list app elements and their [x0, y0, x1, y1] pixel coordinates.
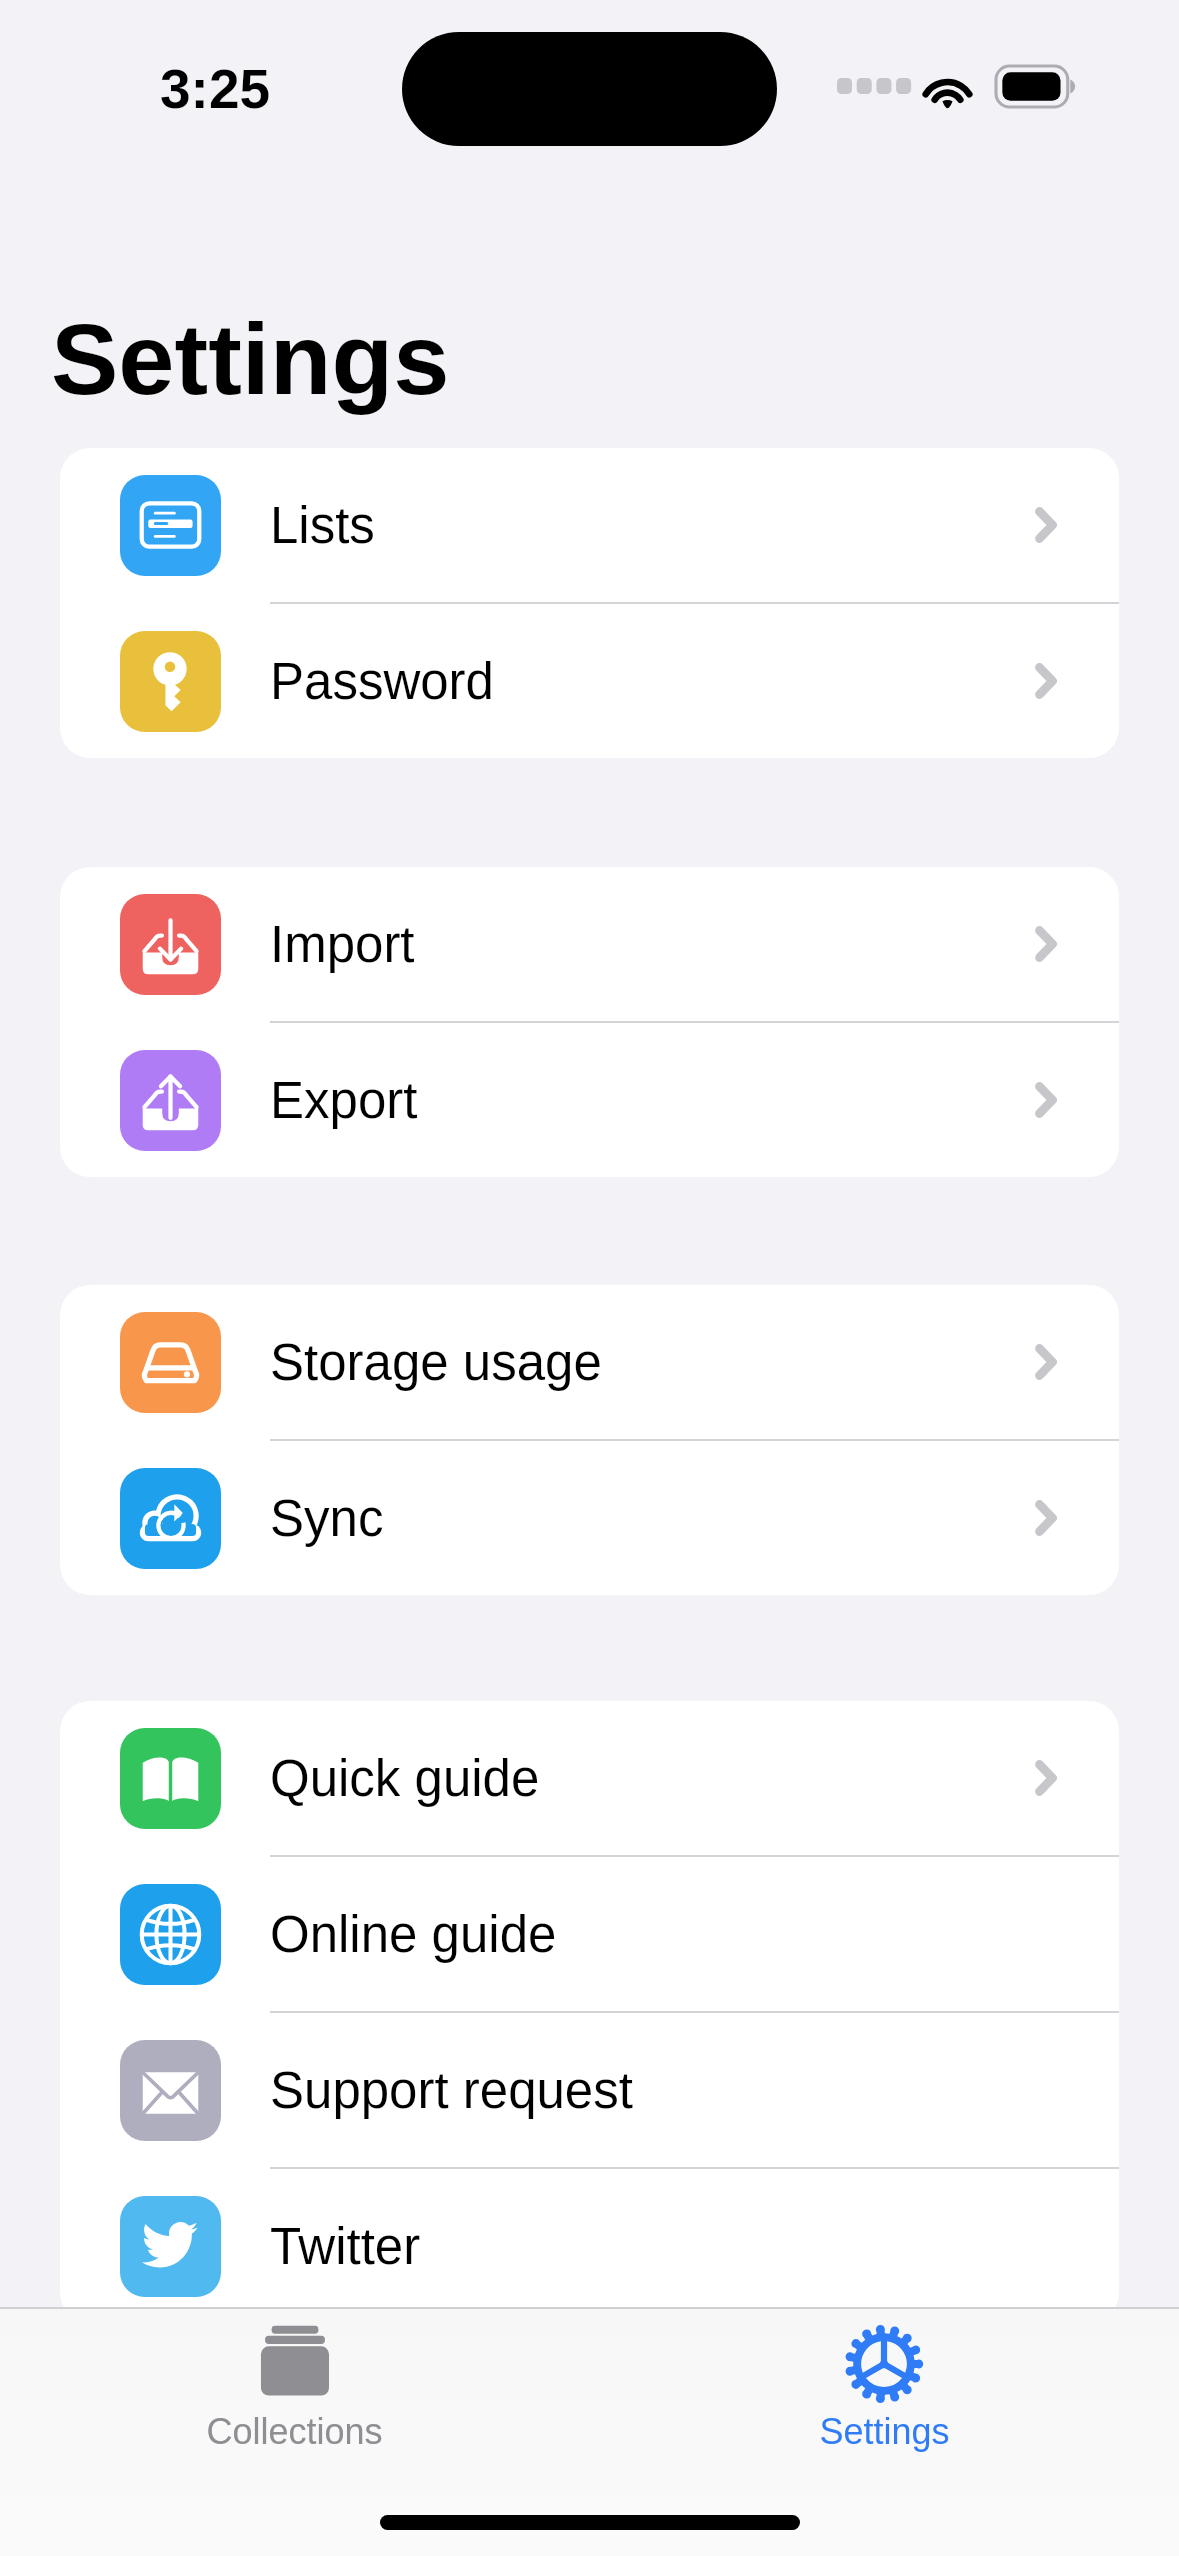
- staticText: Quick guide: [270, 1750, 540, 1807]
- staticText: Online guide: [270, 1906, 557, 1963]
- staticText: Settings: [819, 2411, 950, 2451]
- button[interactable]: Twitter: [60, 2169, 1119, 2323]
- staticText: Support request: [270, 2062, 633, 2119]
- button[interactable]: Online guide: [60, 1857, 1119, 2011]
- staticText: Settings: [51, 303, 450, 416]
- button[interactable]: Settings: [589, 2309, 1179, 2451]
- staticText: Twitter: [270, 2218, 421, 2275]
- staticText: Collections: [206, 2411, 383, 2451]
- button[interactable]: Collections: [0, 2309, 589, 2451]
- button[interactable]: Sync: [60, 1441, 1119, 1595]
- staticText: Password: [270, 653, 494, 710]
- staticText: Lists: [270, 497, 375, 554]
- staticText: Storage usage: [270, 1334, 602, 1391]
- button[interactable]: Support request: [60, 2013, 1119, 2167]
- button[interactable]: Password: [60, 604, 1119, 758]
- staticText: Sync: [270, 1490, 384, 1547]
- other: Settings: [843, 2323, 925, 2405]
- button[interactable]: Import: [60, 867, 1119, 1021]
- button[interactable]: Export: [60, 1023, 1119, 1177]
- staticText: Export: [270, 1072, 418, 1129]
- button[interactable]: Lists: [60, 448, 1119, 602]
- staticText: 3:25: [160, 58, 271, 119]
- button[interactable]: Storage usage: [60, 1285, 1119, 1439]
- staticText: Import: [270, 916, 415, 973]
- button[interactable]: Quick guide: [60, 1701, 1119, 1855]
- other: Collections: [254, 2323, 336, 2405]
